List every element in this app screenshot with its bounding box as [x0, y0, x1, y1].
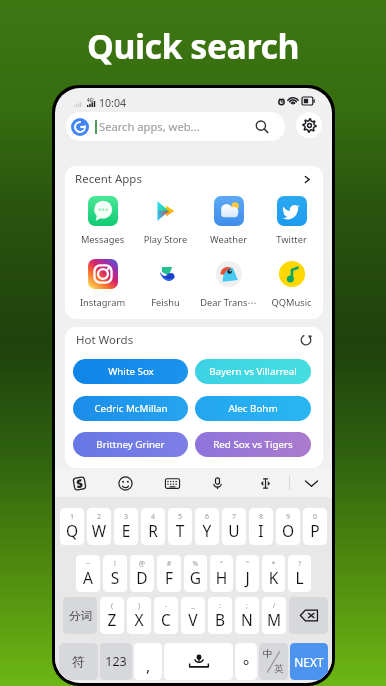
button[interactable]: ~: [76, 555, 100, 592]
staticText: ): [127, 601, 151, 611]
staticText: R: [141, 520, 165, 541]
button[interactable]: Play Store: [135, 192, 196, 252]
staticText: 1: [60, 512, 84, 522]
staticText: 7: [222, 512, 246, 522]
staticText: Cedric McMillan: [94, 402, 168, 415]
button[interactable]: :: [208, 597, 232, 634]
button[interactable]: 2: [87, 508, 111, 545]
staticText: T: [168, 520, 192, 541]
button[interactable]: °: [235, 643, 257, 680]
staticText: ~: [76, 559, 100, 569]
staticText: K: [262, 567, 285, 588]
button[interactable]: #: [157, 555, 181, 592]
button[interactable]: *: [262, 555, 285, 592]
staticText: C: [154, 609, 178, 630]
staticText: 符: [72, 654, 85, 670]
button[interactable]: 8: [249, 508, 273, 545]
button[interactable]: ): [127, 597, 151, 634]
staticText: Weather: [198, 233, 259, 246]
button[interactable]: Emoji: [114, 472, 136, 494]
staticText: /: [262, 601, 286, 611]
button[interactable]: ”: [236, 555, 259, 592]
staticText: !: [103, 559, 127, 569]
button[interactable]: 6: [195, 508, 219, 545]
staticText: Feishu: [135, 296, 196, 309]
button[interactable]: Settings: [296, 112, 322, 138]
staticText: Hot Words: [76, 332, 134, 348]
button[interactable]: Recent Apps: [65, 166, 323, 192]
button[interactable]: _: [181, 597, 205, 634]
button[interactable]: QQMusic: [261, 255, 322, 315]
staticText: Red Sox vs Tigers: [213, 438, 293, 451]
button[interactable]: 4: [141, 508, 165, 545]
button[interactable]: Brittney Griner: [73, 432, 188, 457]
button[interactable]: -: [154, 597, 178, 634]
button[interactable]: Voice input: [206, 472, 228, 494]
staticText: ;: [235, 601, 259, 611]
button[interactable]: Hide keyboard: [300, 472, 322, 494]
button[interactable]: (: [100, 597, 124, 634]
staticText: L: [288, 567, 311, 588]
button[interactable]: Feishu: [135, 255, 196, 315]
button[interactable]: Space: [164, 643, 233, 680]
button[interactable]: Bayern vs Villarreal: [195, 359, 311, 384]
staticText: QQMusic: [261, 296, 322, 309]
button[interactable]: Refresh: [298, 332, 314, 348]
button[interactable]: Messages: [72, 192, 133, 252]
button[interactable]: Weather: [198, 192, 259, 252]
staticText: 4: [141, 512, 165, 522]
button[interactable]: 5: [168, 508, 192, 545]
button[interactable]: 123: [100, 643, 132, 680]
staticText: Twitter: [261, 233, 322, 246]
button[interactable]: Red Sox vs Tigers: [195, 432, 311, 457]
staticText: %: [184, 559, 207, 569]
button[interactable]: ;: [235, 597, 259, 634]
staticText: D: [130, 567, 154, 588]
button[interactable]: Backspace: [289, 597, 328, 634]
button[interactable]: Input method: [68, 472, 90, 494]
staticText: *: [262, 559, 285, 569]
button[interactable]: Instagram: [72, 255, 133, 315]
staticText: 0: [303, 512, 327, 522]
button[interactable]: @: [130, 555, 154, 592]
staticText: G: [184, 567, 207, 588]
button[interactable]: 1: [60, 508, 84, 545]
button[interactable]: Dear Trans⋯: [198, 255, 259, 315]
button[interactable]: Switch Chinese English: [259, 643, 288, 680]
staticText: -: [154, 601, 178, 611]
staticText: F: [157, 567, 181, 588]
staticText: Alec Bohm: [228, 402, 278, 415]
button[interactable]: Cedric McMillan: [73, 396, 188, 421]
button[interactable]: Twitter: [261, 192, 322, 252]
staticText: ”: [236, 559, 259, 569]
button[interactable]: 符: [59, 643, 98, 680]
button[interactable]: 3: [114, 508, 138, 545]
button[interactable]: !: [103, 555, 127, 592]
button[interactable]: ?: [288, 555, 311, 592]
staticText: P: [303, 520, 327, 541]
staticText: Recent Apps: [75, 171, 142, 187]
button[interactable]: 0: [303, 508, 327, 545]
staticText: 5: [168, 512, 192, 522]
button[interactable]: NEXT: [290, 643, 328, 680]
staticText: O: [276, 520, 300, 541]
button[interactable]: 7: [222, 508, 246, 545]
staticText: Z: [100, 609, 124, 630]
button[interactable]: Keyboard layout: [161, 472, 183, 494]
button[interactable]: “: [210, 555, 233, 592]
staticText: 3: [114, 512, 138, 522]
button[interactable]: Search apps, web...: [66, 112, 285, 141]
staticText: Bayern vs Villarreal: [209, 365, 297, 378]
staticText: A: [76, 567, 100, 588]
button[interactable]: Alec Bohm: [195, 396, 311, 421]
button[interactable]: Move cursor: [254, 472, 276, 494]
staticText: NEXT: [294, 654, 324, 670]
button[interactable]: White Sox: [73, 359, 188, 384]
button[interactable]: %: [184, 555, 207, 592]
staticText: Search apps, web...: [99, 119, 255, 134]
staticText: 123: [105, 653, 127, 670]
button[interactable]: 分词: [63, 597, 97, 634]
button[interactable]: 9: [276, 508, 300, 545]
button[interactable]: /: [262, 597, 286, 634]
button[interactable]: ,: [134, 643, 162, 680]
